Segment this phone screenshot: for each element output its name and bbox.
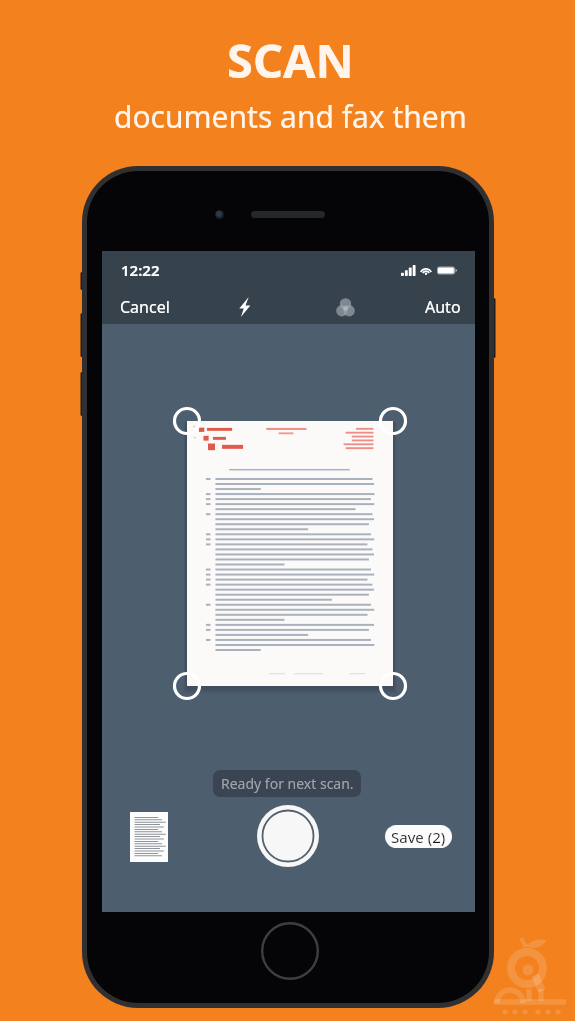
button[interactable]: Save (2) <box>385 825 452 848</box>
button[interactable]: Capture <box>257 805 319 867</box>
staticText: Cancel <box>120 296 170 318</box>
button[interactable]: Cancel <box>101 289 189 325</box>
staticText: Ready for next scan. <box>221 774 354 793</box>
staticText: SCAN <box>227 28 354 92</box>
staticText: Auto <box>425 296 461 318</box>
button[interactable]: Color filter <box>321 289 369 325</box>
button[interactable]: Auto <box>403 289 483 325</box>
staticText: Save (2) <box>391 827 446 847</box>
staticText: 12:22 <box>121 260 160 280</box>
staticText: documents and fax them <box>114 96 467 137</box>
button[interactable]: Flash <box>220 289 268 325</box>
button[interactable]: Last scan thumbnail <box>130 812 168 862</box>
